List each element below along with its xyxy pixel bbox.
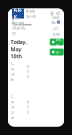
button[interactable]: Approve bbox=[50, 48, 64, 55]
staticText: View bbox=[55, 37, 61, 47]
staticText: Approve: 4 of 16 bbox=[12, 37, 27, 47]
staticText: OT 0:00 bbox=[53, 26, 60, 37]
staticText: 8:00 bbox=[26, 63, 29, 79]
staticText: Clock Out bbox=[10, 94, 14, 120]
staticText: Today, May 10th bbox=[10, 38, 26, 60]
staticText: Andy Smith bbox=[26, 8, 36, 19]
staticText: ARK bbox=[13, 6, 22, 21]
button[interactable]: View bbox=[50, 38, 64, 45]
staticText: Clock In bbox=[10, 61, 14, 82]
staticText: Total 36:15 bbox=[51, 15, 60, 25]
staticText: < Timesheets bbox=[12, 17, 32, 27]
staticText: 4:30 bbox=[26, 99, 29, 115]
staticText: Approve bbox=[55, 44, 61, 60]
staticText: Pay Period: 2024-05-01 bbox=[12, 15, 26, 36]
